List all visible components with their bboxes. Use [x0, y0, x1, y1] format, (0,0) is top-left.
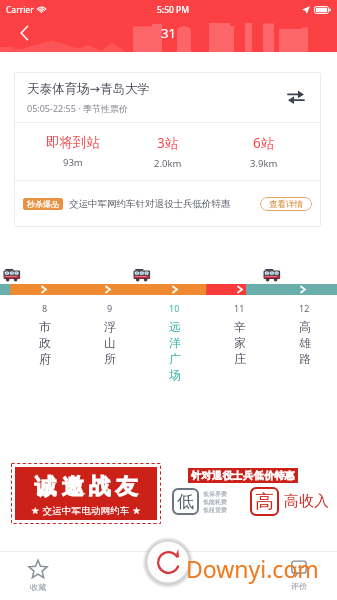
- staticText: 12: [299, 302, 310, 314]
- staticText: 市 政 府: [39, 319, 51, 367]
- staticText: 10: [169, 302, 180, 314]
- staticText: 低保养费 低能耗费 低租赁费: [203, 490, 227, 514]
- staticText: 93m: [63, 156, 83, 169]
- staticText: 即将到站: [46, 134, 100, 151]
- staticText: 查看详情: [269, 199, 303, 210]
- staticText: 2.0km: [154, 157, 182, 170]
- staticText: 6站: [253, 134, 275, 152]
- staticText: 浮 山 所: [104, 319, 116, 367]
- staticText: 辛 家 庄: [234, 319, 246, 367]
- staticText: 5:50 PM: [157, 4, 190, 16]
- staticText: 收藏: [30, 582, 46, 592]
- staticText: 交运中军网约车针对退役士兵低价特惠: [69, 198, 231, 210]
- button[interactable]: Swap direction: [281, 82, 311, 112]
- staticText: 11: [234, 302, 245, 314]
- staticText: 3站: [157, 134, 179, 152]
- button[interactable]: 10: [142, 302, 207, 383]
- staticText: 05:05-22:55 · 季节性票价: [27, 102, 128, 114]
- staticText: Downyi.com: [186, 553, 319, 584]
- button[interactable]: Refresh: [146, 540, 190, 584]
- staticText: Carrier: [6, 4, 34, 16]
- staticText: 高 雄 路: [299, 319, 311, 367]
- staticText: 8: [42, 302, 48, 314]
- staticText: 3.9km: [250, 157, 278, 170]
- button[interactable]: Back: [12, 20, 38, 46]
- button[interactable]: 诚邀战友: [11, 463, 161, 524]
- button[interactable]: 12: [272, 302, 337, 367]
- button[interactable]: 查看详情: [260, 197, 312, 211]
- staticText: ★ 交运中军电动网约车 ★: [31, 504, 142, 517]
- button[interactable]: 9: [77, 302, 142, 367]
- staticText: 低: [177, 491, 194, 512]
- button[interactable]: 天泰体育场→青岛大学: [14, 72, 321, 227]
- button[interactable]: 评价: [261, 551, 337, 600]
- button[interactable]: 8: [12, 302, 77, 367]
- staticText: 诚邀战友: [32, 473, 140, 501]
- button[interactable]: 收藏: [0, 551, 76, 600]
- staticText: 天泰体育场→青岛大学: [27, 81, 150, 97]
- staticText: 31: [161, 24, 176, 42]
- staticText: 秒杀爆品: [27, 199, 59, 209]
- staticText: 评价: [291, 581, 307, 591]
- staticText: 高收入: [284, 492, 329, 511]
- staticText: 针对退役士兵低价特惠: [191, 469, 295, 482]
- staticText: 9: [107, 302, 113, 314]
- button[interactable]: 11: [207, 302, 272, 367]
- staticText: 高: [255, 490, 274, 514]
- staticText: 远 洋 广 场: [169, 319, 181, 383]
